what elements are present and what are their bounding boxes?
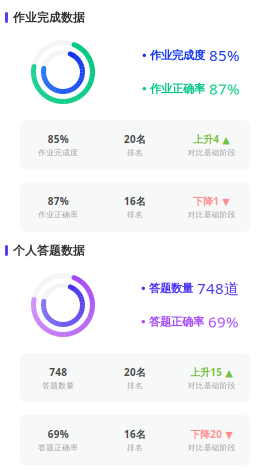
button[interactable]: 748 xyxy=(20,353,250,403)
staticText: 排名 xyxy=(127,210,143,219)
staticText: 下降20 ▼ xyxy=(190,427,233,441)
staticText: 下降1 ▼ xyxy=(193,194,230,208)
staticText: 答题正确率 xyxy=(38,443,78,452)
staticText: 上升15 ▲ xyxy=(190,365,233,379)
staticText: 748道 xyxy=(197,278,239,298)
staticText: 16名 xyxy=(124,427,146,441)
staticText: 20名 xyxy=(124,132,146,146)
staticText: 答题数量 xyxy=(149,281,193,295)
staticText: 85% xyxy=(48,132,69,146)
staticText: 20名 xyxy=(124,365,146,379)
staticText: 上升4 ▲ xyxy=(193,132,230,146)
staticText: 对比基础阶段 xyxy=(188,381,236,390)
staticText: 对比基础阶段 xyxy=(188,148,236,157)
staticText: 作业完成数据 xyxy=(13,10,85,25)
staticText: 16名 xyxy=(124,194,146,208)
staticText: 69% xyxy=(48,427,69,441)
staticText: 69% xyxy=(208,311,238,332)
staticText: 对比基础阶段 xyxy=(188,210,236,219)
staticText: 87% xyxy=(209,78,239,99)
staticText: 排名 xyxy=(127,381,143,390)
staticText: 对比基础阶段 xyxy=(188,443,236,452)
staticText: 作业正确率 xyxy=(150,82,205,96)
button[interactable]: 87% xyxy=(20,182,250,232)
staticText: 排名 xyxy=(127,443,143,452)
button[interactable]: 69% xyxy=(20,415,250,465)
staticText: 排名 xyxy=(127,148,143,157)
staticText: 85% xyxy=(209,45,239,65)
staticText: 作业完成度 xyxy=(38,148,78,157)
staticText: 答题数量 xyxy=(42,381,74,390)
staticText: 答题正确率 xyxy=(149,315,204,329)
staticText: 87% xyxy=(48,194,69,208)
button[interactable]: 85% xyxy=(20,120,250,170)
staticText: 作业正确率 xyxy=(38,210,78,219)
staticText: 作业完成度 xyxy=(150,48,205,62)
staticText: 个人答题数据 xyxy=(13,243,85,258)
staticText: 748 xyxy=(49,365,67,379)
